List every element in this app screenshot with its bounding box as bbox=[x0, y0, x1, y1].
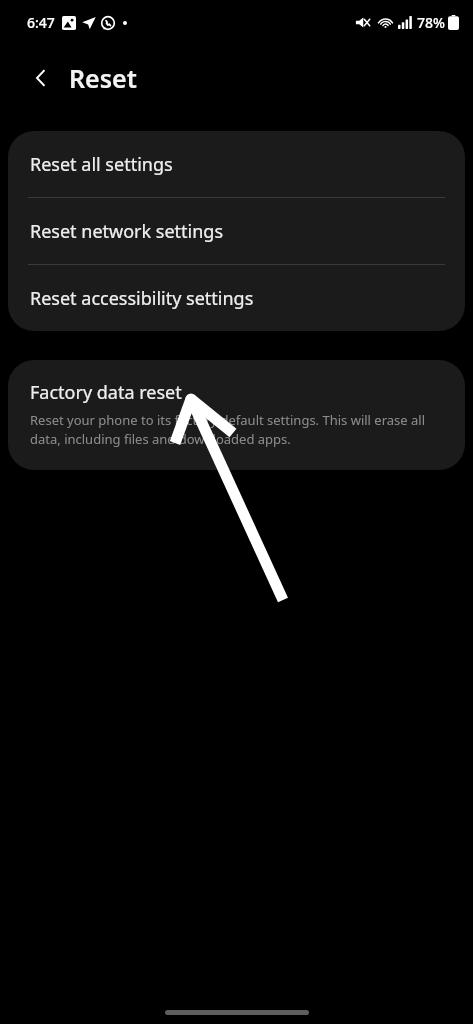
staticText: 6:47 bbox=[27, 13, 55, 32]
button[interactable]: Reset network settings bbox=[8, 198, 465, 264]
button[interactable]: Reset all settings bbox=[8, 131, 465, 197]
staticText: Reset accessibility settings bbox=[30, 286, 254, 311]
staticText: 78% bbox=[417, 13, 445, 32]
staticText: Factory data reset bbox=[30, 380, 182, 405]
staticText: Reset bbox=[69, 61, 137, 95]
button[interactable]: Factory data reset bbox=[8, 360, 465, 470]
staticText: Reset network settings bbox=[30, 219, 224, 244]
staticText: Reset your phone to its factory default … bbox=[30, 411, 445, 448]
button[interactable]: Back bbox=[22, 59, 60, 97]
staticText: Reset all settings bbox=[30, 152, 173, 177]
button[interactable]: Reset accessibility settings bbox=[8, 265, 465, 331]
